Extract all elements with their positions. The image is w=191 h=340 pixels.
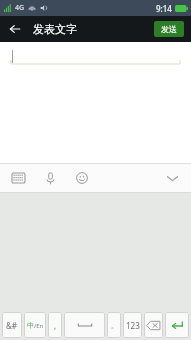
button[interactable]: Keyboard: [8, 168, 28, 188]
staticText: 9:14: [156, 3, 172, 14]
staticText: &#: [6, 320, 18, 331]
button[interactable]: 发送: [154, 21, 184, 37]
button[interactable]: Backspace: [144, 312, 163, 338]
button[interactable]: 123: [123, 312, 142, 338]
button[interactable]: ,: [48, 312, 62, 338]
staticText: 中: [27, 321, 34, 330]
button[interactable]: Collapse: [162, 168, 182, 188]
staticText: 发表文字: [33, 22, 77, 36]
staticText: /En: [34, 322, 44, 330]
staticText: 发送: [161, 24, 177, 34]
button[interactable]: Back: [2, 16, 28, 42]
button[interactable]: 中: [24, 312, 46, 338]
button[interactable]: &#: [2, 312, 22, 338]
button[interactable]: Enter: [165, 312, 189, 338]
staticText: 4G: [15, 3, 25, 13]
button[interactable]: Voice input: [40, 168, 60, 188]
button[interactable]: 。: [107, 312, 121, 338]
staticText: 。: [111, 321, 118, 330]
staticText: 123: [126, 320, 140, 331]
button[interactable]: Emoji: [72, 168, 92, 188]
staticText: ,: [54, 320, 57, 331]
button[interactable]: [64, 312, 105, 338]
